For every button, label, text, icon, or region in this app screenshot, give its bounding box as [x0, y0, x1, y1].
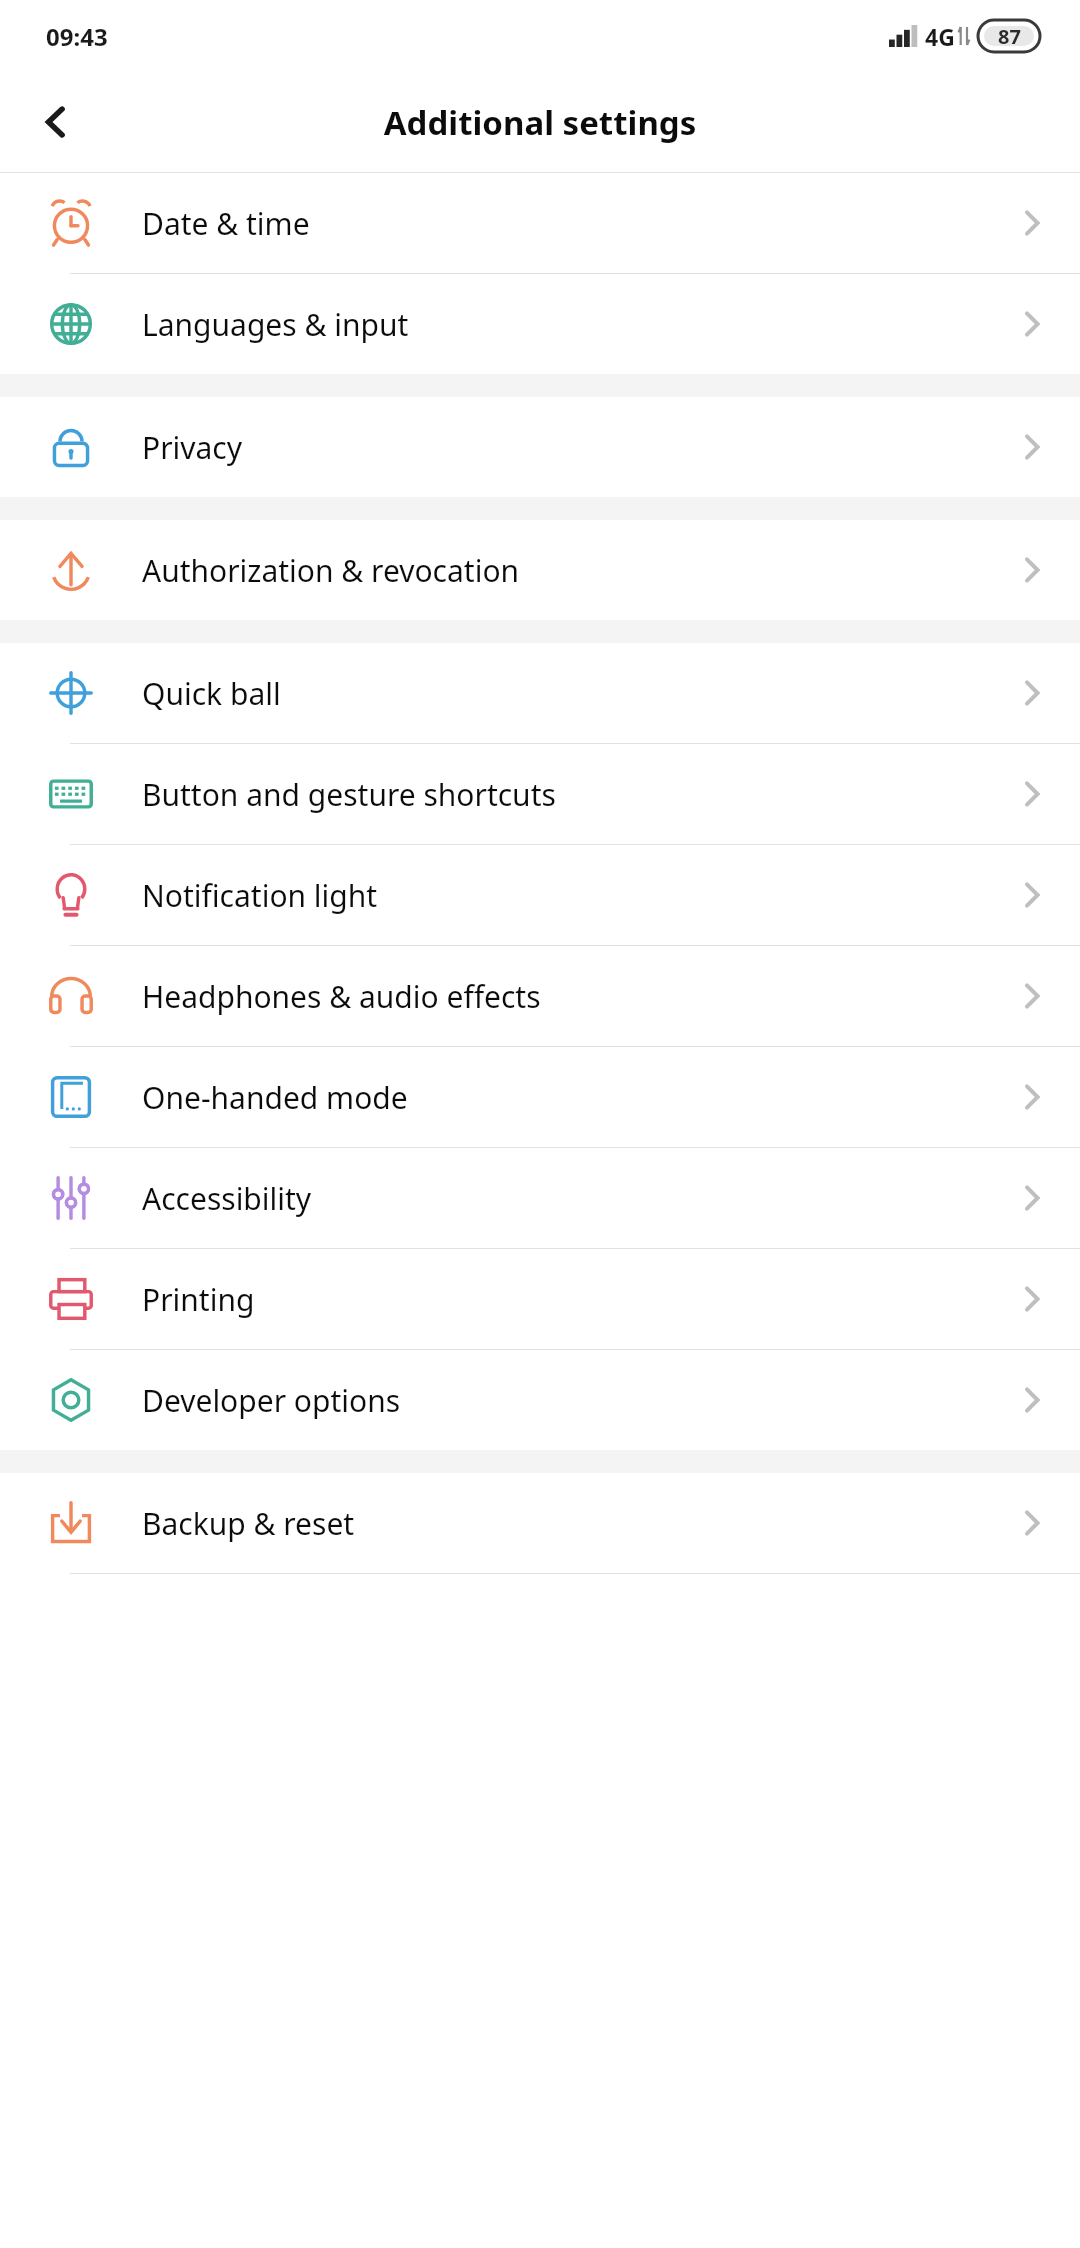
staticText: Additional settings: [0, 100, 1080, 145]
staticText: Backup & reset: [142, 1503, 984, 1544]
staticText: Printing: [142, 1279, 984, 1320]
staticText: Developer options: [142, 1380, 984, 1421]
button[interactable]: Back: [22, 88, 90, 156]
staticText: Date & time: [142, 203, 984, 244]
staticText: Accessibility: [142, 1178, 984, 1219]
button[interactable]: One-handed mode: [0, 1047, 1080, 1147]
button[interactable]: Button and gesture shortcuts: [0, 744, 1080, 844]
staticText: Authorization & revocation: [142, 550, 984, 591]
button[interactable]: Backup & reset: [0, 1473, 1080, 1573]
staticText: Button and gesture shortcuts: [142, 774, 984, 815]
staticText: Notification light: [142, 875, 984, 916]
button[interactable]: Authorization & revocation: [0, 520, 1080, 620]
button[interactable]: Accessibility: [0, 1148, 1080, 1248]
button[interactable]: Date & time: [0, 173, 1080, 273]
staticText: Quick ball: [142, 673, 984, 714]
button[interactable]: Quick ball: [0, 643, 1080, 743]
staticText: 87: [998, 23, 1021, 50]
button[interactable]: Notification light: [0, 845, 1080, 945]
staticText: Privacy: [142, 427, 984, 468]
staticText: Languages & input: [142, 304, 984, 345]
button[interactable]: Printing: [0, 1249, 1080, 1349]
staticText: One-handed mode: [142, 1077, 984, 1118]
button[interactable]: Languages & input: [0, 274, 1080, 374]
staticText: 09:43: [46, 20, 108, 53]
staticText: 4G: [925, 21, 955, 52]
button[interactable]: Developer options: [0, 1350, 1080, 1450]
staticText: Headphones & audio effects: [142, 976, 984, 1017]
button[interactable]: Headphones & audio effects: [0, 946, 1080, 1046]
button[interactable]: Privacy: [0, 397, 1080, 497]
